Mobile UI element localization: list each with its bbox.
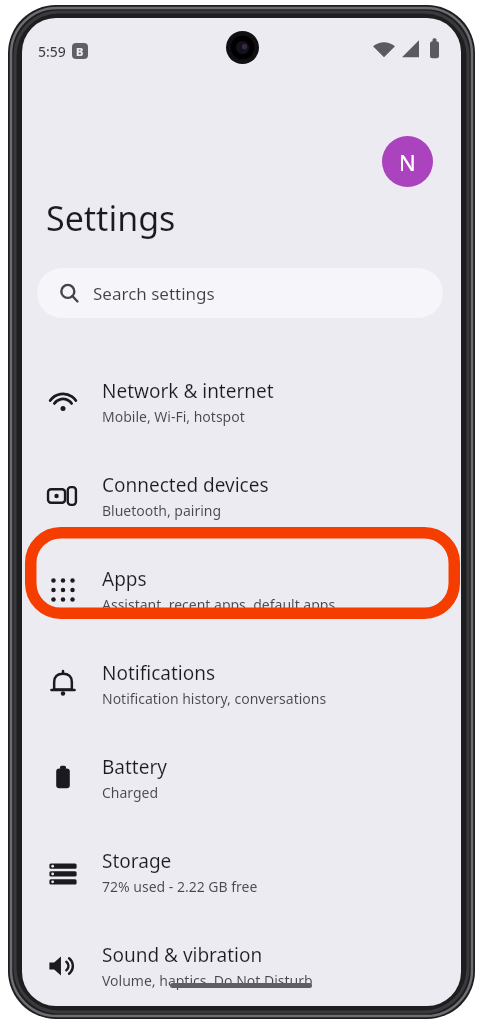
staticText: B <box>76 44 84 59</box>
staticText: Search settings <box>93 282 215 305</box>
button[interactable]: Notifications <box>22 637 461 731</box>
staticText: Bluetooth, pairing <box>102 501 222 520</box>
staticText: Network & internet <box>102 378 274 404</box>
staticText: Notifications <box>102 660 216 686</box>
staticText: 5:59 <box>38 42 66 61</box>
staticText: Apps <box>102 566 147 592</box>
button[interactable]: Battery <box>22 731 461 825</box>
button[interactable]: Network & internet <box>22 355 461 449</box>
staticText: Notification history, conversations <box>102 689 327 708</box>
staticText: N <box>399 147 416 177</box>
staticText: 72% used - 2.22 GB free <box>102 877 258 896</box>
staticText: Mobile, Wi-Fi, hotspot <box>102 407 245 426</box>
button[interactable]: Apps <box>22 543 461 637</box>
staticText: Volume, haptics, Do Not Disturb <box>102 971 313 990</box>
staticText: Battery <box>102 754 167 780</box>
button[interactable]: Connected devices <box>22 449 461 543</box>
staticText: Assistant, recent apps, default apps <box>102 595 336 614</box>
staticText: Charged <box>102 783 159 802</box>
button[interactable]: Account <box>382 136 433 187</box>
button[interactable]: Storage <box>22 825 461 919</box>
button[interactable]: Sound & vibration <box>22 919 461 1006</box>
button[interactable]: Search settings <box>37 268 443 318</box>
staticText: Storage <box>102 848 172 874</box>
staticText: Settings <box>46 195 176 241</box>
staticText: Connected devices <box>102 472 269 498</box>
staticText: Sound & vibration <box>102 942 263 968</box>
